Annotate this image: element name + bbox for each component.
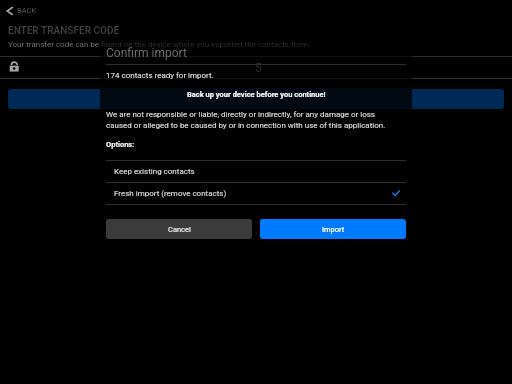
staticText: BACK — [17, 6, 37, 15]
staticText: Keep existing contacts — [114, 167, 195, 176]
staticText: ENTER TRANSFER CODE — [8, 25, 120, 37]
staticText: 174 contacts ready for import. — [106, 71, 214, 80]
staticText: Options: — [106, 140, 135, 149]
other: Selected — [392, 189, 400, 197]
button[interactable]: Fresh import (remove contacts) — [106, 183, 406, 204]
staticText: Fresh import (remove contacts) — [114, 189, 227, 198]
staticText: 5 — [255, 61, 262, 75]
button[interactable]: Keep existing contacts — [106, 161, 406, 182]
button[interactable] — [8, 89, 504, 109]
button[interactable]: Cancel — [106, 219, 252, 239]
staticText: Back up your device before you continue! — [187, 90, 326, 99]
staticText: Confirm import — [106, 46, 187, 60]
staticText: Cancel — [168, 225, 191, 234]
staticText: Import — [322, 225, 345, 234]
button[interactable]: Import — [260, 219, 406, 239]
staticText: We are not responsible or liable, direct… — [106, 110, 406, 130]
button[interactable]: Back — [6, 6, 37, 15]
staticText: Your transfer code can be found on the d… — [8, 40, 311, 49]
